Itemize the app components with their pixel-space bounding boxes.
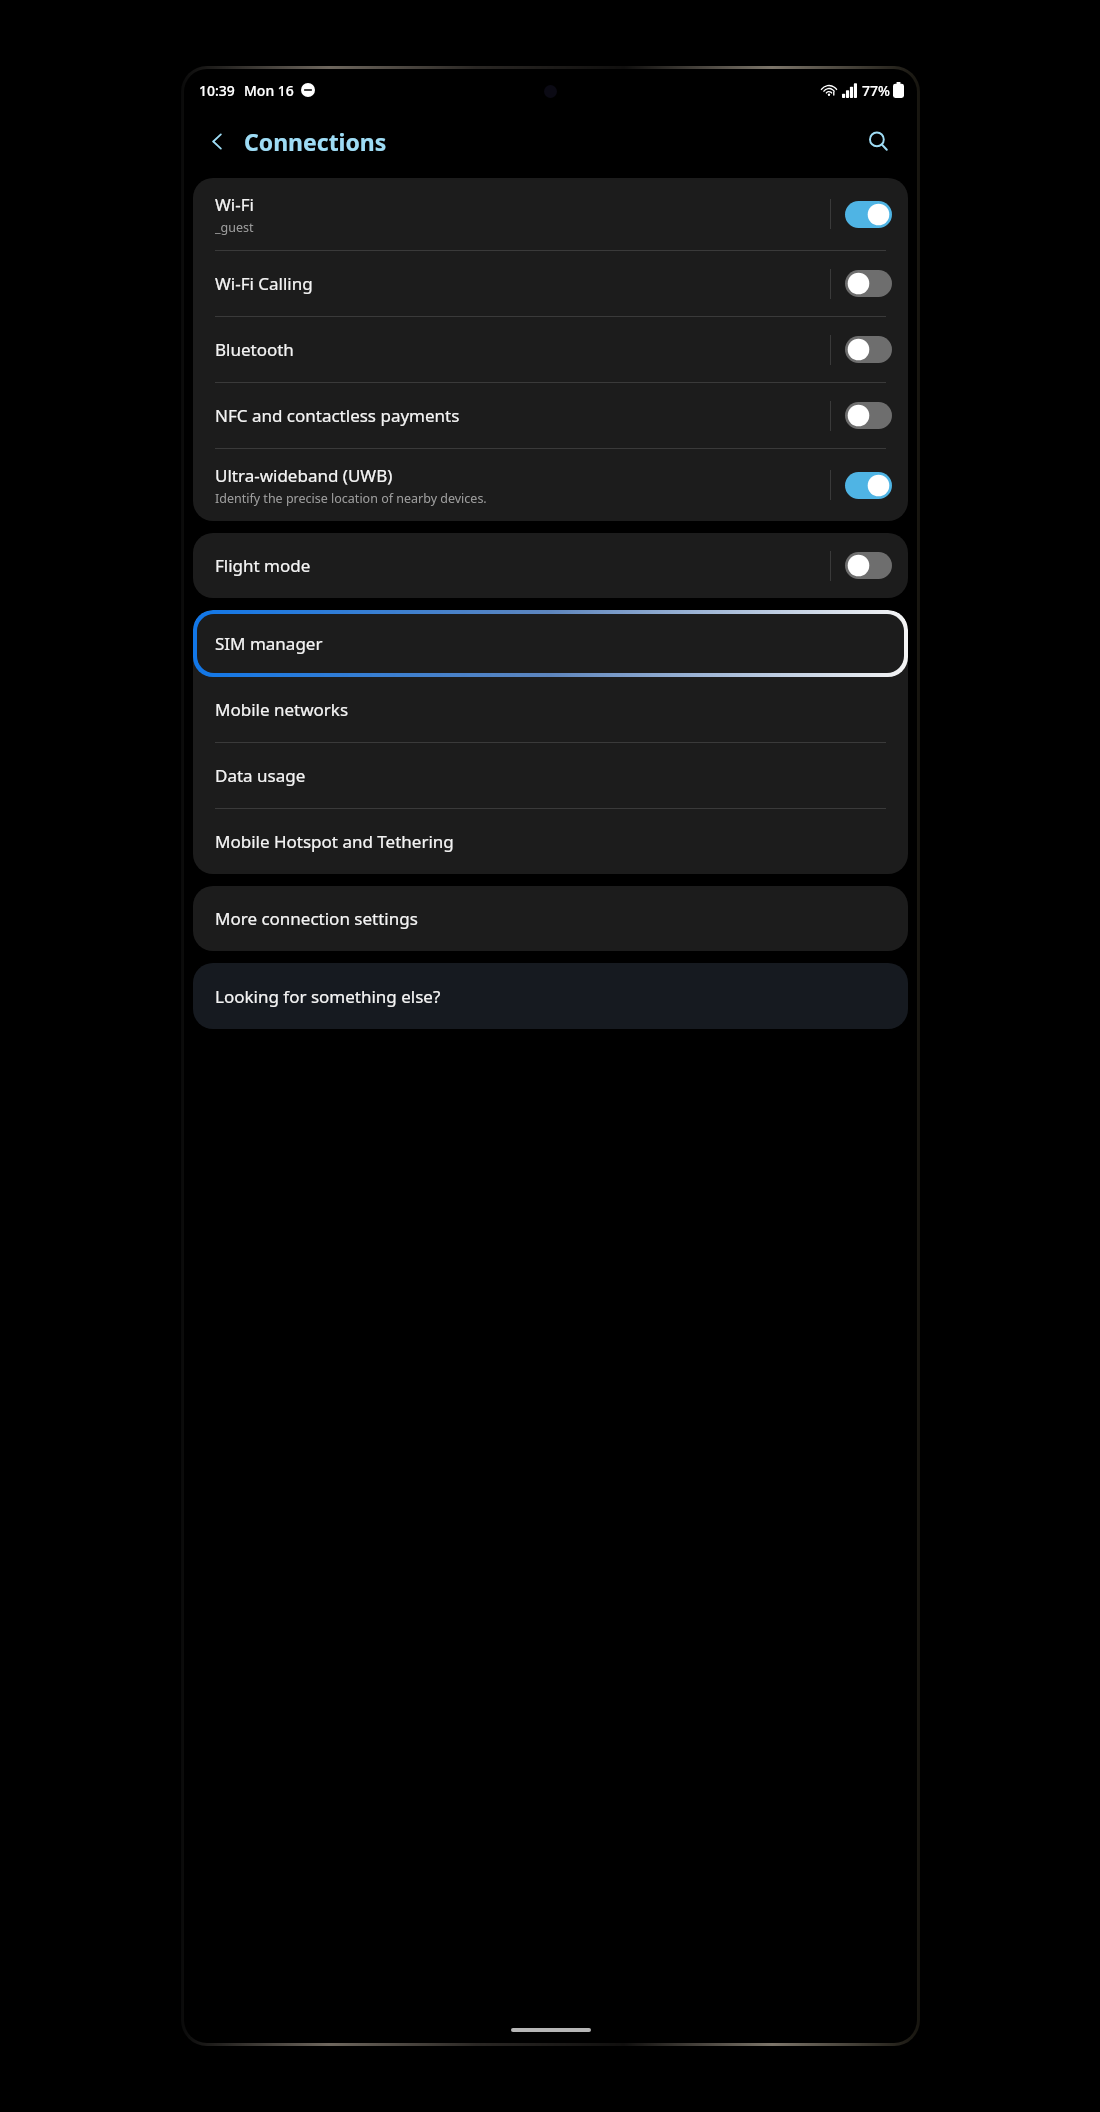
staticText: Looking for something else? <box>215 985 441 1008</box>
staticText: Mobile Hotspot and Tethering <box>215 830 454 853</box>
button[interactable]: Off <box>845 552 892 579</box>
button[interactable]: Wi-Fi <box>193 178 908 250</box>
staticText: Wi-Fi Calling <box>215 272 313 295</box>
button[interactable]: Bluetooth <box>193 317 908 382</box>
staticText: 10:39 <box>199 81 235 100</box>
button[interactable]: Flight mode <box>193 533 908 598</box>
staticText: Connections <box>244 126 387 157</box>
button[interactable]: Off <box>845 402 892 429</box>
staticText: More connection settings <box>215 907 418 930</box>
button[interactable]: Off <box>845 270 892 297</box>
button[interactable]: Back <box>194 118 240 164</box>
button[interactable]: On <box>845 201 892 228</box>
staticText: Ultra-wideband (UWB) <box>215 464 393 487</box>
button[interactable]: Ultra-wideband (UWB) <box>193 449 908 521</box>
staticText: SIM manager <box>215 632 323 655</box>
staticText: Mobile networks <box>215 698 349 721</box>
button[interactable]: Looking for something else? <box>193 963 908 1029</box>
button[interactable]: Search <box>855 118 901 164</box>
button[interactable]: SIM manager <box>197 614 904 673</box>
button[interactable]: On <box>845 472 892 499</box>
staticText: _guest <box>215 219 254 236</box>
staticText: Wi-Fi <box>215 193 254 216</box>
button[interactable]: NFC and contactless payments <box>193 383 908 448</box>
button[interactable]: Off <box>845 336 892 363</box>
staticText: Data usage <box>215 764 306 787</box>
button[interactable]: Wi-Fi Calling <box>193 251 908 316</box>
button[interactable]: Data usage <box>193 743 908 808</box>
staticText: NFC and contactless payments <box>215 404 460 427</box>
staticText: Mon 16 <box>244 81 294 100</box>
button[interactable]: Mobile Hotspot and Tethering <box>193 809 908 874</box>
button[interactable]: More connection settings <box>193 886 908 951</box>
button[interactable]: Mobile networks <box>193 677 908 742</box>
staticText: 77% <box>862 81 890 100</box>
staticText: Bluetooth <box>215 338 294 361</box>
staticText: Flight mode <box>215 554 311 577</box>
staticText: Identify the precise location of nearby … <box>215 490 487 507</box>
